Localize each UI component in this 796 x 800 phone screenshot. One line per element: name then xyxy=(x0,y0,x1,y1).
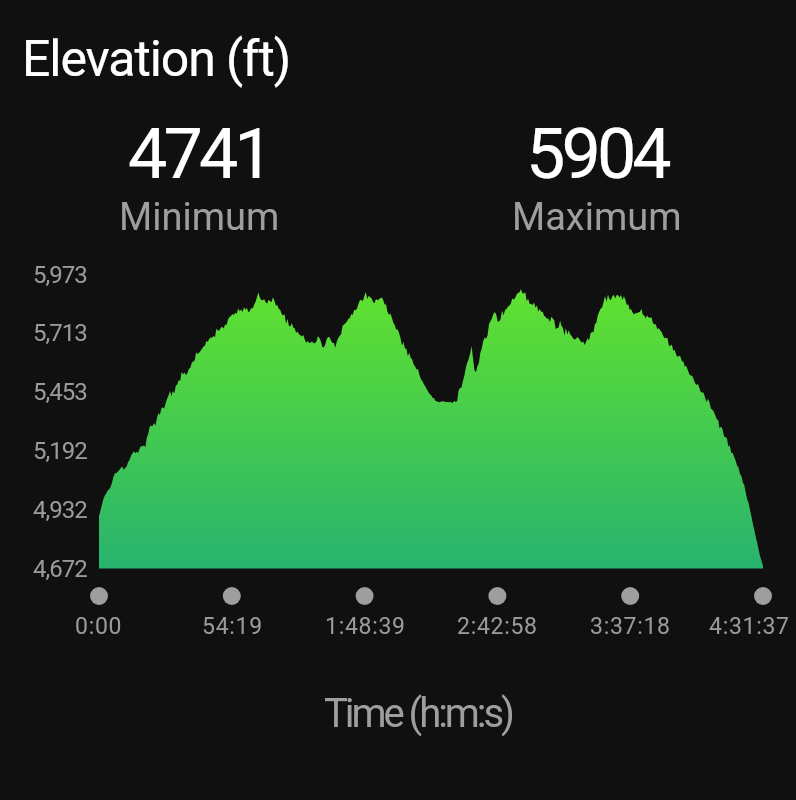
staticText: 5,192 xyxy=(33,437,87,465)
staticText: 4,932 xyxy=(33,496,87,524)
staticText: Maximum xyxy=(512,195,682,240)
button[interactable]: 4741 xyxy=(0,113,398,240)
staticText: 5,973 xyxy=(33,261,87,289)
staticText: 3:37:18 xyxy=(590,613,671,640)
staticText: 54:19 xyxy=(202,613,263,640)
staticText: 5904 xyxy=(526,113,668,195)
staticText: 5,453 xyxy=(33,378,87,406)
staticText: 2:42:58 xyxy=(457,613,538,640)
staticText: Elevation (ft) xyxy=(22,30,291,89)
staticText: Time (h:m:s) xyxy=(324,690,512,737)
staticText: 5,713 xyxy=(33,319,87,347)
staticText: Minimum xyxy=(119,195,280,240)
staticText: 1:48:39 xyxy=(325,613,406,640)
button[interactable]: 5904 xyxy=(398,113,796,240)
staticText: 0:00 xyxy=(75,613,123,640)
staticText: 4,672 xyxy=(33,555,87,583)
staticText: 4:31:37 xyxy=(709,613,790,640)
staticText: 4741 xyxy=(128,113,270,195)
button[interactable]: Elevation over time chart xyxy=(0,0,796,800)
